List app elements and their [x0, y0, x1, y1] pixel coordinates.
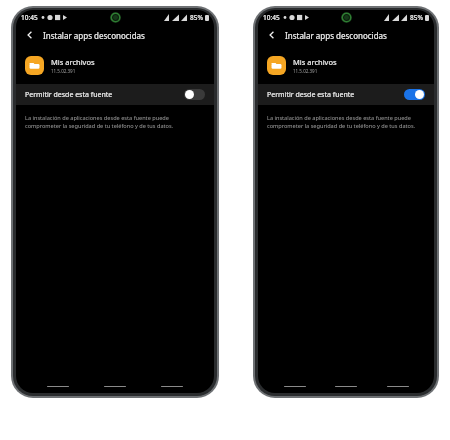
- button[interactable]: Permitir desde esta fuente: [184, 89, 205, 100]
- staticText: Permitir desde esta fuente: [267, 90, 355, 100]
- button[interactable]: Mis archivos: [258, 51, 434, 79]
- button[interactable]: Back: [157, 381, 187, 391]
- button[interactable]: Permitir desde esta fuente: [16, 84, 214, 105]
- staticText: Permitir desde esta fuente: [25, 90, 113, 100]
- staticText: La instalación de aplicaciones desde est…: [267, 114, 411, 122]
- staticText: Instalar apps desconocidas: [285, 30, 387, 41]
- button[interactable]: Permitir desde esta fuente: [258, 84, 434, 105]
- button[interactable]: Recents: [43, 381, 73, 391]
- staticText: Mis archivos: [51, 57, 95, 67]
- button[interactable]: Back: [383, 381, 413, 391]
- staticText: comprometer la seguridad de tu teléfono …: [267, 122, 416, 130]
- button[interactable]: Home: [100, 381, 130, 391]
- button[interactable]: Permitir desde esta fuente: [404, 89, 425, 100]
- button[interactable]: Mis archivos: [16, 51, 214, 79]
- button[interactable]: Home: [331, 381, 361, 391]
- staticText: 85%: [190, 13, 203, 22]
- staticText: 85%: [410, 13, 423, 22]
- button[interactable]: Back: [22, 27, 38, 43]
- button[interactable]: Back: [264, 27, 280, 43]
- staticText: 10:45: [263, 13, 280, 22]
- staticText: comprometer la seguridad de tu teléfono …: [25, 122, 174, 130]
- staticText: Mis archivos: [293, 57, 337, 67]
- staticText: 11.5.02.391: [293, 68, 318, 74]
- button[interactable]: Recents: [280, 381, 310, 391]
- staticText: 10:45: [21, 13, 38, 22]
- staticText: La instalación de aplicaciones desde est…: [25, 114, 169, 122]
- staticText: 11.5.02.391: [51, 68, 76, 74]
- staticText: Instalar apps desconocidas: [43, 30, 145, 41]
